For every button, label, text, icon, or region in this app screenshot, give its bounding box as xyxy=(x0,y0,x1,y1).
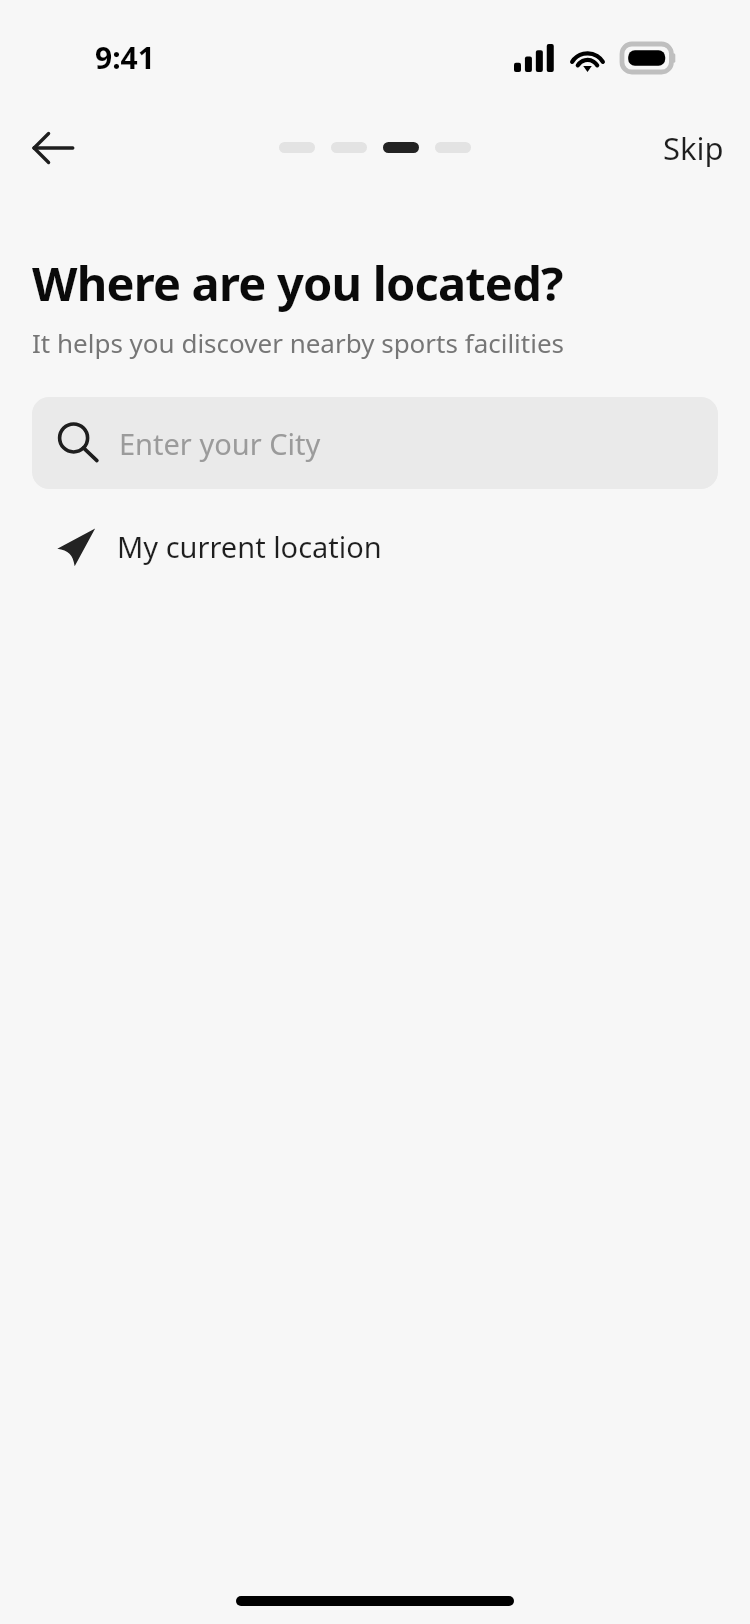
button[interactable]: Skip xyxy=(637,115,750,181)
staticText: 9:41 xyxy=(95,37,155,78)
staticText: Where are you located? xyxy=(32,251,563,315)
staticText: Skip xyxy=(663,127,724,169)
staticText: Enter your City xyxy=(119,424,321,463)
button[interactable]: Back xyxy=(22,117,84,179)
staticText: It helps you discover nearby sports faci… xyxy=(32,325,565,360)
button[interactable]: My current location xyxy=(32,508,718,584)
button[interactable]: Enter your City xyxy=(32,397,718,489)
staticText: My current location xyxy=(117,527,382,566)
